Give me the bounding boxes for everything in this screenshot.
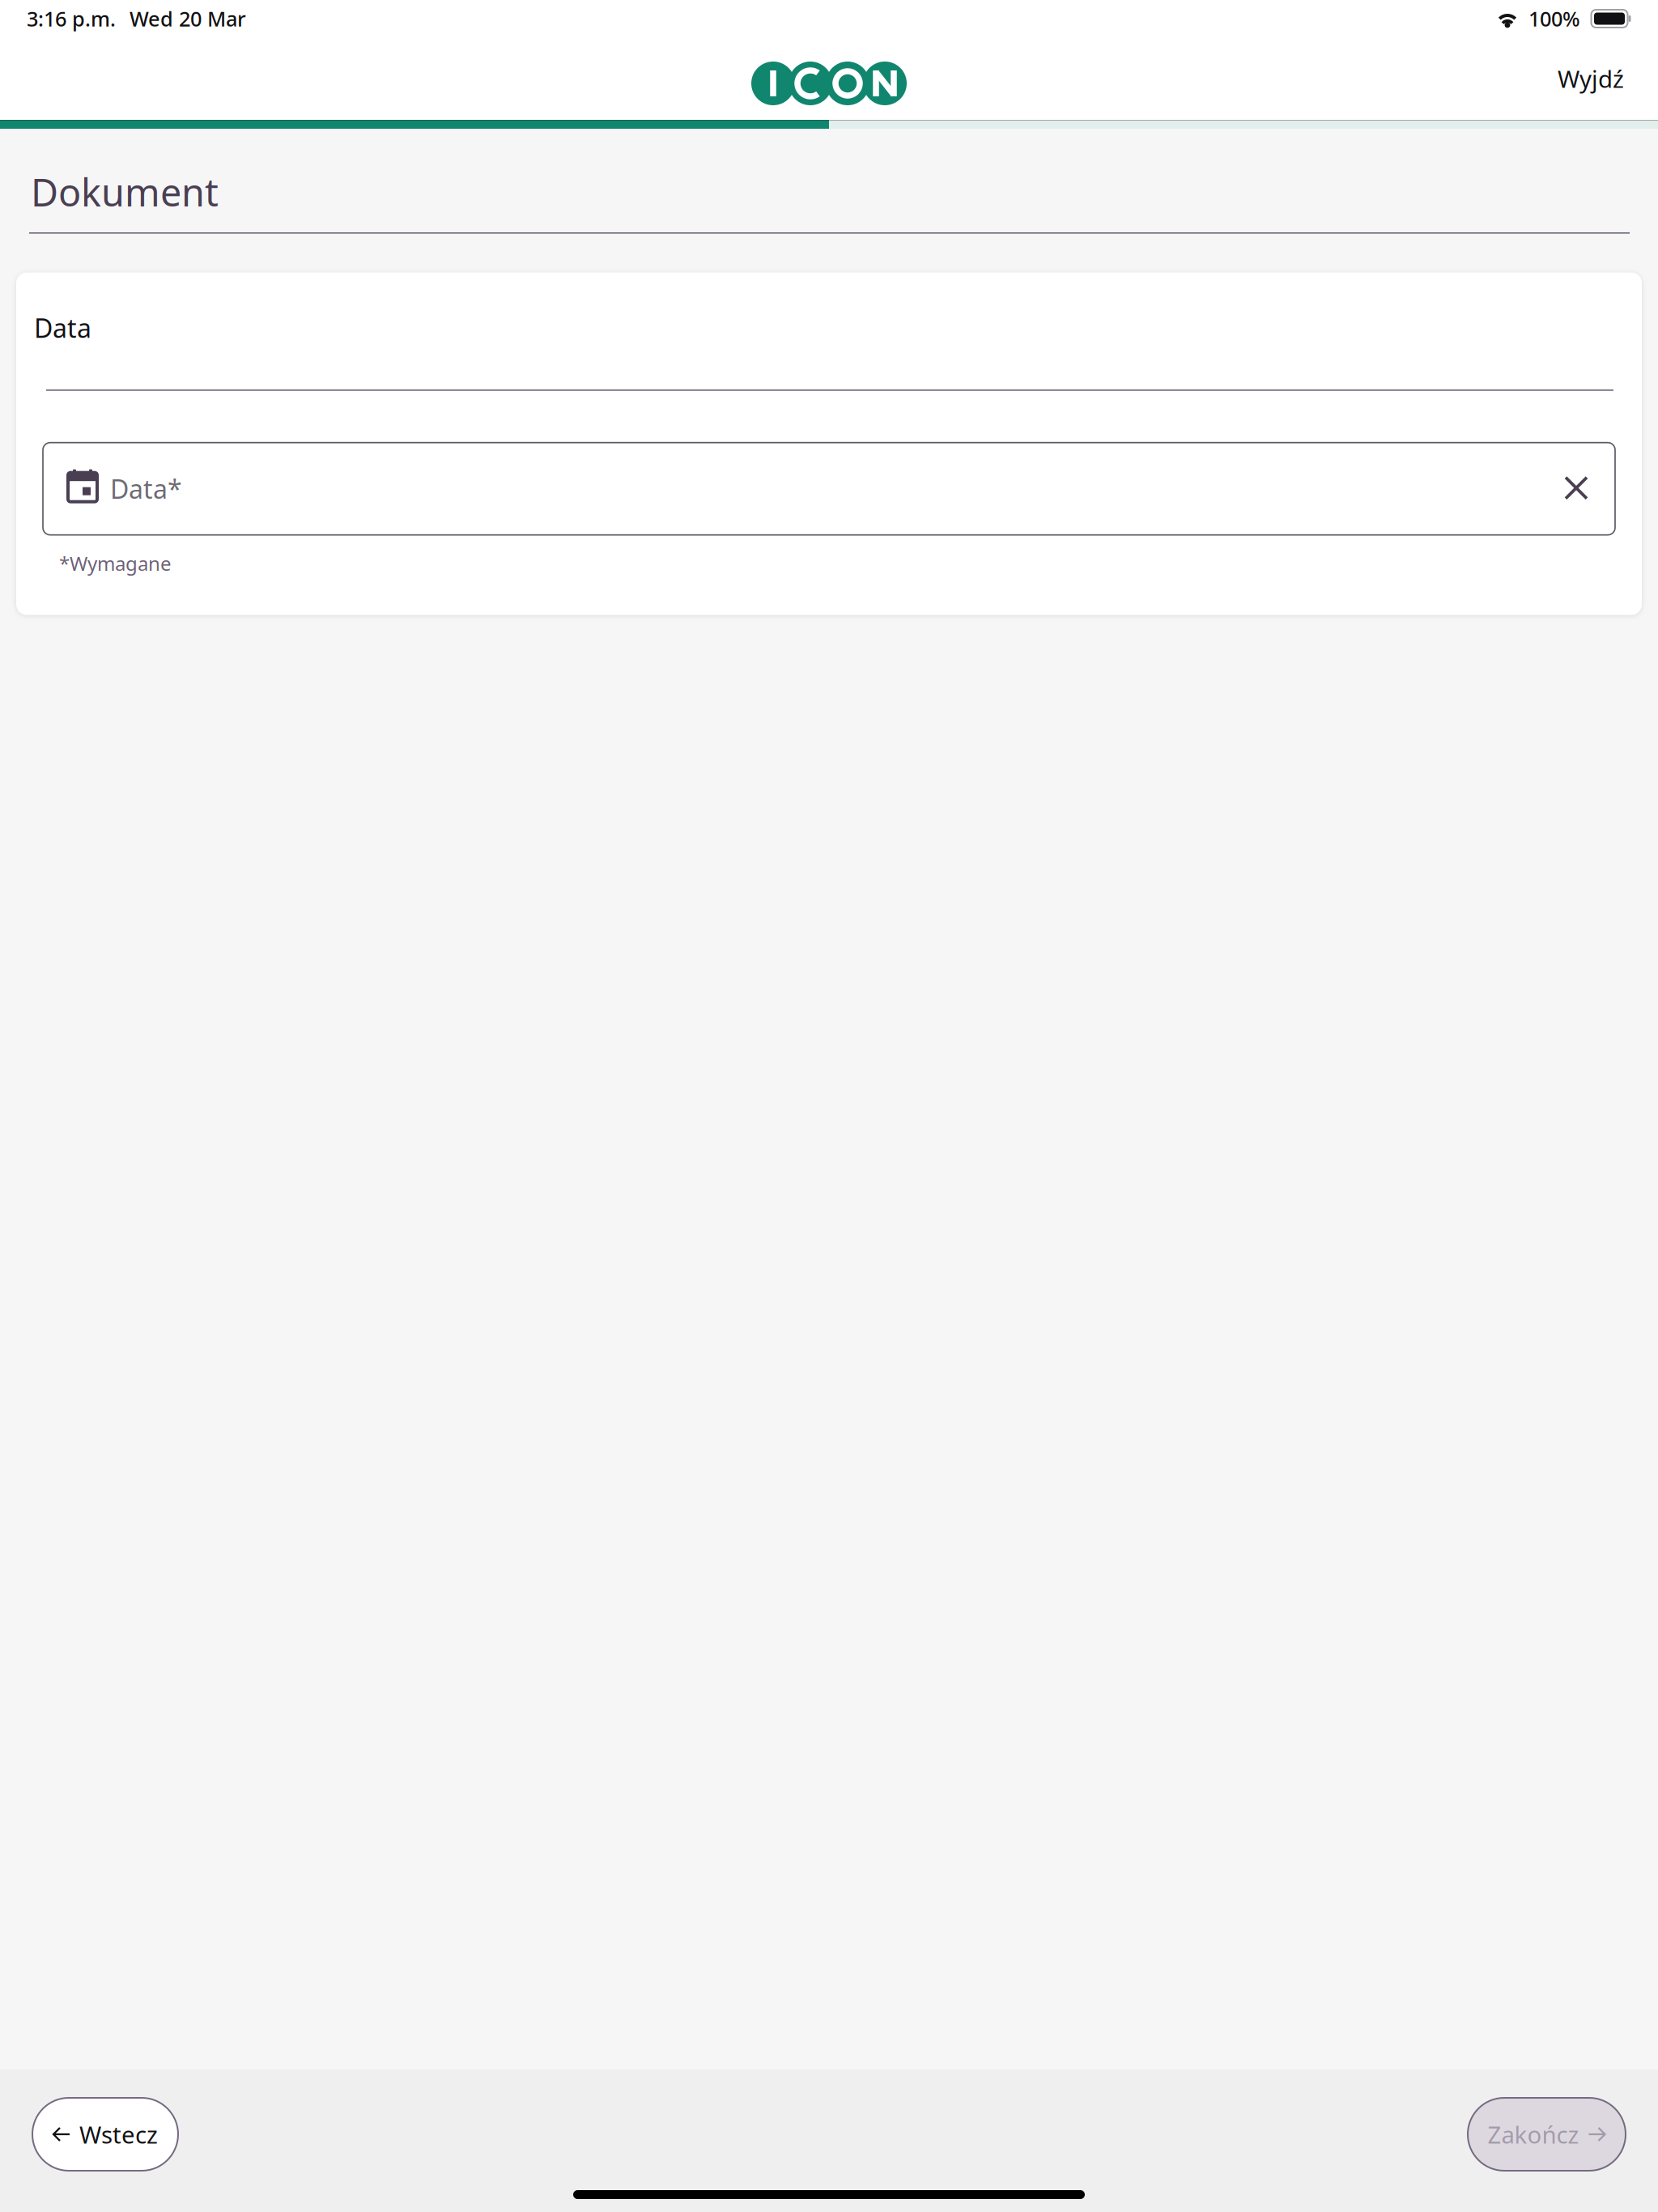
- staticText: *Wymagane: [59, 550, 172, 576]
- staticText: 100%: [1528, 5, 1580, 32]
- button[interactable]: Wstecz: [32, 2098, 178, 2171]
- staticText: Data*: [110, 472, 182, 506]
- button[interactable]: Wyjdź: [1525, 47, 1658, 111]
- staticText: Wed 20 Mar: [130, 5, 246, 32]
- staticText: Wyjdź: [1558, 63, 1624, 94]
- button[interactable]: Clear: [1548, 454, 1615, 524]
- staticText: 3:16 p.m.: [27, 5, 116, 32]
- staticText: Data: [34, 311, 91, 345]
- button[interactable]: Zakończ: [1468, 2098, 1626, 2171]
- staticText: Dokument: [31, 167, 219, 217]
- staticText: Wstecz: [79, 2118, 158, 2150]
- staticText: Zakończ: [1488, 2118, 1579, 2150]
